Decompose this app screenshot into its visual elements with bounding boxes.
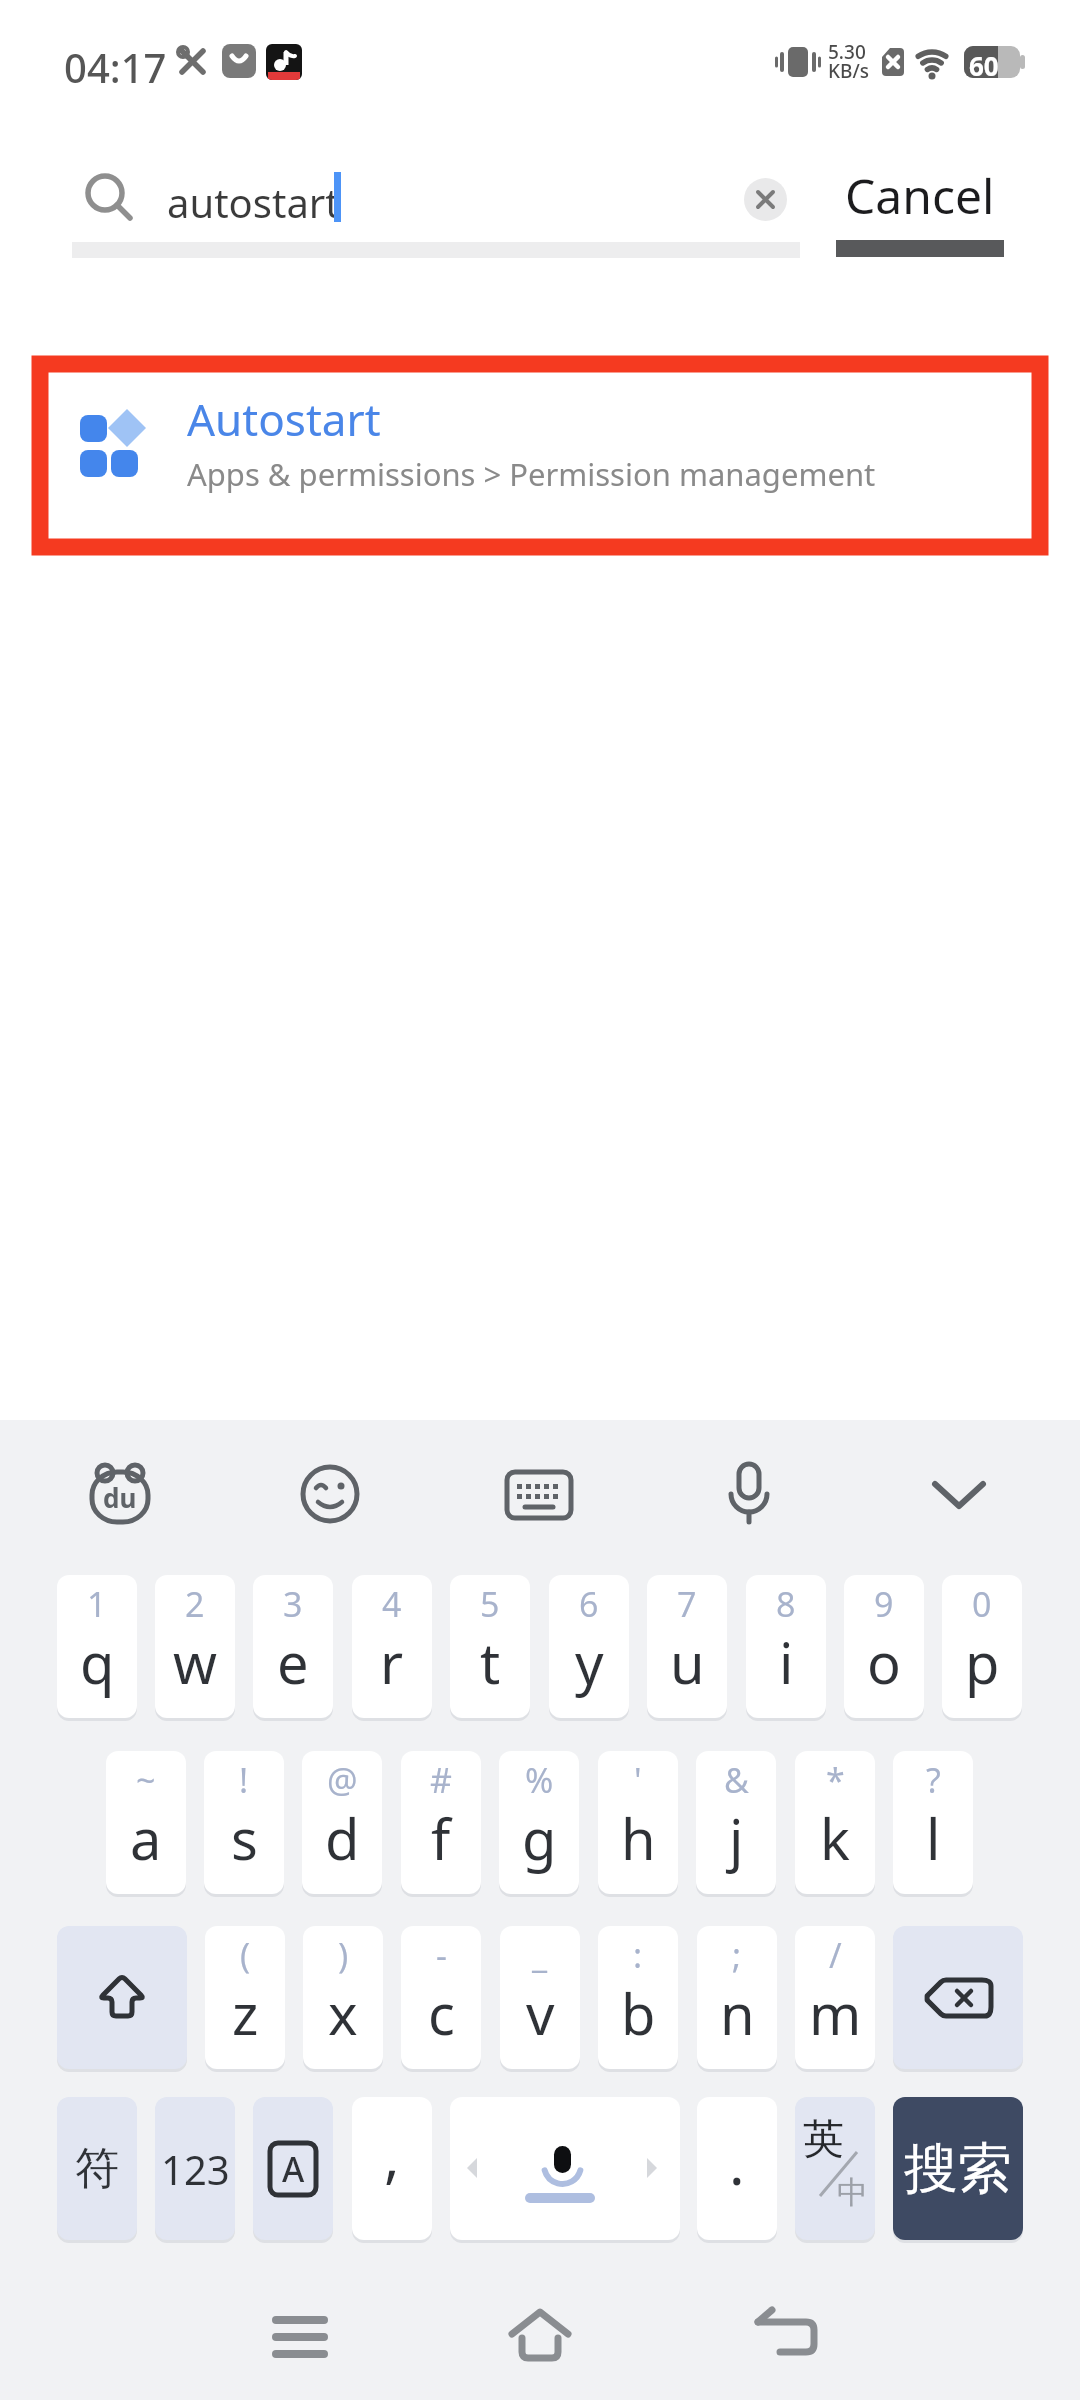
staticText: / [829,1932,842,1978]
button[interactable]: ; [697,1926,777,2069]
button[interactable]: 2 [155,1575,235,1718]
button[interactable]: ' [598,1751,678,1894]
button[interactable] [450,2097,680,2240]
staticText: z [232,1975,259,2051]
button[interactable]: 1 [57,1575,137,1718]
staticText: 60 [969,48,999,78]
button[interactable]: ? [893,1751,973,1894]
staticText: 1 [87,1581,107,1627]
button[interactable]: _ [500,1926,580,2069]
staticText: autostart [167,175,340,229]
staticText: ; [732,1932,742,1978]
staticText: b [621,1975,656,2051]
button[interactable] [744,2300,816,2370]
button[interactable]: 123 [155,2097,235,2240]
staticText: - [436,1932,447,1978]
staticText: 3 [283,1581,303,1627]
button[interactable] [717,1462,781,1526]
button[interactable]: * [795,1751,875,1894]
button[interactable]: A [253,2097,333,2240]
staticText: p [965,1624,1000,1700]
button[interactable]: 符 [57,2097,137,2240]
staticText: KB/s [828,58,869,84]
staticText: . [729,2123,745,2202]
button[interactable] [893,1926,1023,2069]
staticText: j [729,1800,744,1876]
staticText: * [826,1757,845,1803]
staticText: A [282,2146,305,2192]
button[interactable]: 7 [647,1575,727,1718]
button[interactable]: , [352,2097,432,2240]
button[interactable] [504,2300,576,2370]
button[interactable]: : [598,1926,678,2069]
staticText: ? [926,1757,941,1803]
staticText: q [80,1624,115,1700]
button[interactable] [298,1462,362,1526]
staticText: x [328,1975,358,2051]
staticText: % [525,1757,554,1803]
button[interactable] [264,2306,336,2370]
staticText: Autostart [187,389,381,449]
staticText: r [380,1624,404,1700]
staticText: 中 [837,2173,868,2212]
button[interactable]: ) [303,1926,383,2069]
button[interactable]: 0 [942,1575,1022,1718]
button[interactable]: 8 [746,1575,826,1718]
staticText: 04:17 [64,40,167,94]
staticText: , [384,2115,400,2194]
button[interactable]: - [401,1926,481,2069]
staticText: h [621,1800,656,1876]
button[interactable]: & [696,1751,776,1894]
button[interactable]: ~ [106,1751,186,1894]
staticText: u [670,1624,705,1700]
button[interactable]: 4 [352,1575,432,1718]
staticText: o [867,1624,901,1700]
button[interactable]: 9 [844,1575,924,1718]
button[interactable]: du [88,1462,152,1526]
staticText: y [575,1624,604,1700]
staticText: ' [634,1757,642,1803]
staticText: 4 [382,1581,402,1627]
button[interactable]: 3 [253,1575,333,1718]
staticText: t [480,1624,501,1700]
staticText: _ [532,1932,548,1978]
button[interactable]: / [795,1926,875,2069]
staticText: @ [327,1757,358,1803]
staticText: 搜索 [904,2135,1012,2203]
staticText: a [130,1800,162,1876]
staticText: c [428,1975,455,2051]
staticText: ! [239,1757,249,1803]
staticText: 5.30 [828,39,866,65]
staticText: l [926,1800,941,1876]
button[interactable]: . [697,2097,777,2240]
button[interactable] [507,1462,571,1526]
button[interactable] [927,1462,991,1526]
staticText: 2 [185,1581,205,1627]
staticText: ~ [136,1757,156,1803]
staticText: du [103,1480,137,1515]
staticText: n [720,1975,755,2051]
staticText: 7 [677,1581,697,1627]
staticText: w [173,1624,218,1700]
staticText: Cancel [845,163,995,228]
button[interactable] [744,178,787,221]
button[interactable]: 英 [795,2097,875,2240]
staticText: # [430,1757,452,1803]
button[interactable]: @ [302,1751,382,1894]
button[interactable]: Cancel [845,163,995,228]
button[interactable]: 5 [450,1575,530,1718]
button[interactable]: ( [205,1926,285,2069]
button[interactable]: 搜索 [893,2097,1023,2240]
button[interactable]: # [401,1751,481,1894]
staticText: i [779,1624,794,1700]
staticText: k [820,1800,850,1876]
button[interactable] [57,1926,187,2069]
staticText: s [231,1800,258,1876]
button[interactable]: Autostart [56,373,1024,538]
staticText: 符 [75,2141,119,2196]
button[interactable]: 6 [549,1575,629,1718]
button[interactable]: ! [204,1751,284,1894]
staticText: 8 [776,1581,796,1627]
staticText: m [809,1975,862,2051]
button[interactable]: % [499,1751,579,1894]
